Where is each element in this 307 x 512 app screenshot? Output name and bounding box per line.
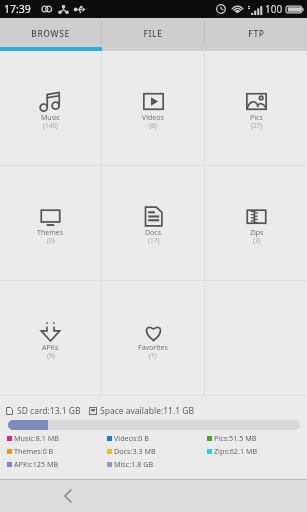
button[interactable]: FTP [205,18,307,47]
staticText: (1) [149,351,157,360]
button[interactable]: FILE [102,18,204,47]
staticText: (0) [47,236,55,245]
staticText: SD card:13.1 GB [17,405,81,417]
staticText: (8) [149,121,157,130]
button[interactable]: Pics [205,51,307,165]
staticText: Misc:1.8 GB [114,459,154,469]
staticText: Videos:0 B [114,433,150,443]
staticText: Pics [250,113,263,123]
button[interactable]: Favorites [102,281,204,395]
staticText: FTP [248,28,265,40]
staticText: BROWSE [31,28,70,40]
staticText: FILE [143,28,163,40]
staticText: (3) [253,236,261,245]
staticText: Pics:51.5 MB [214,433,257,443]
staticText: Themes:0 B [14,446,54,456]
staticText: Zips:62.1 MB [214,446,258,456]
staticText: APKs [42,343,59,353]
staticText: Docs [145,228,162,238]
staticText: Videos [142,113,164,123]
button[interactable]: Music [0,51,101,165]
staticText: (27) [251,121,263,130]
staticText: Music [41,113,61,123]
button[interactable]: Back [54,482,82,510]
staticText: (17) [148,236,160,245]
button[interactable]: BROWSE [0,18,101,47]
staticText: (146) [43,121,59,130]
staticText: Themes [37,228,64,238]
button[interactable]: APKs [0,281,101,395]
staticText: 100 [265,2,283,16]
staticText: Music:8.1 MB [14,433,59,443]
staticText: Favorites [138,343,168,353]
button[interactable]: Zips [205,166,307,280]
staticText: (9) [47,351,55,360]
staticText: 17:39 [4,2,31,16]
staticText: Zips [250,228,264,238]
staticText: Docs:3.3 MB [114,446,156,456]
button[interactable]: Videos [102,51,204,165]
staticText: APKs:125 MB [14,459,59,469]
staticText: Space available:11.1 GB [100,405,195,417]
button[interactable]: Docs [102,166,204,280]
button[interactable]: Themes [0,166,101,280]
